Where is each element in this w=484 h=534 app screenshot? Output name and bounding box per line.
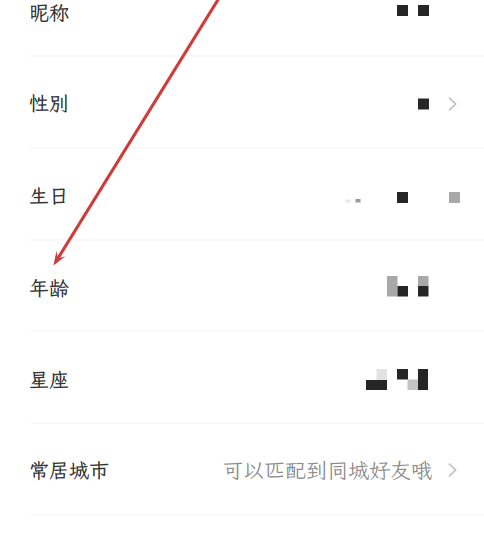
button[interactable]: 常居城市 xyxy=(0,424,484,515)
button[interactable]: 星座 xyxy=(0,334,484,425)
staticText: 昵称 xyxy=(29,0,69,26)
staticText: 生日 xyxy=(29,182,69,209)
button[interactable]: 生日 xyxy=(0,150,484,241)
staticText: 常居城市 xyxy=(29,457,109,483)
staticText: 星座 xyxy=(29,366,69,393)
staticText: 年龄 xyxy=(29,275,69,301)
button[interactable]: 年龄 xyxy=(0,242,484,333)
button[interactable]: 昵称 xyxy=(0,0,484,58)
staticText: 可以匹配到同城好友哦 xyxy=(222,456,432,484)
staticText: 性别 xyxy=(29,90,69,116)
button[interactable]: 性别 xyxy=(0,57,484,148)
